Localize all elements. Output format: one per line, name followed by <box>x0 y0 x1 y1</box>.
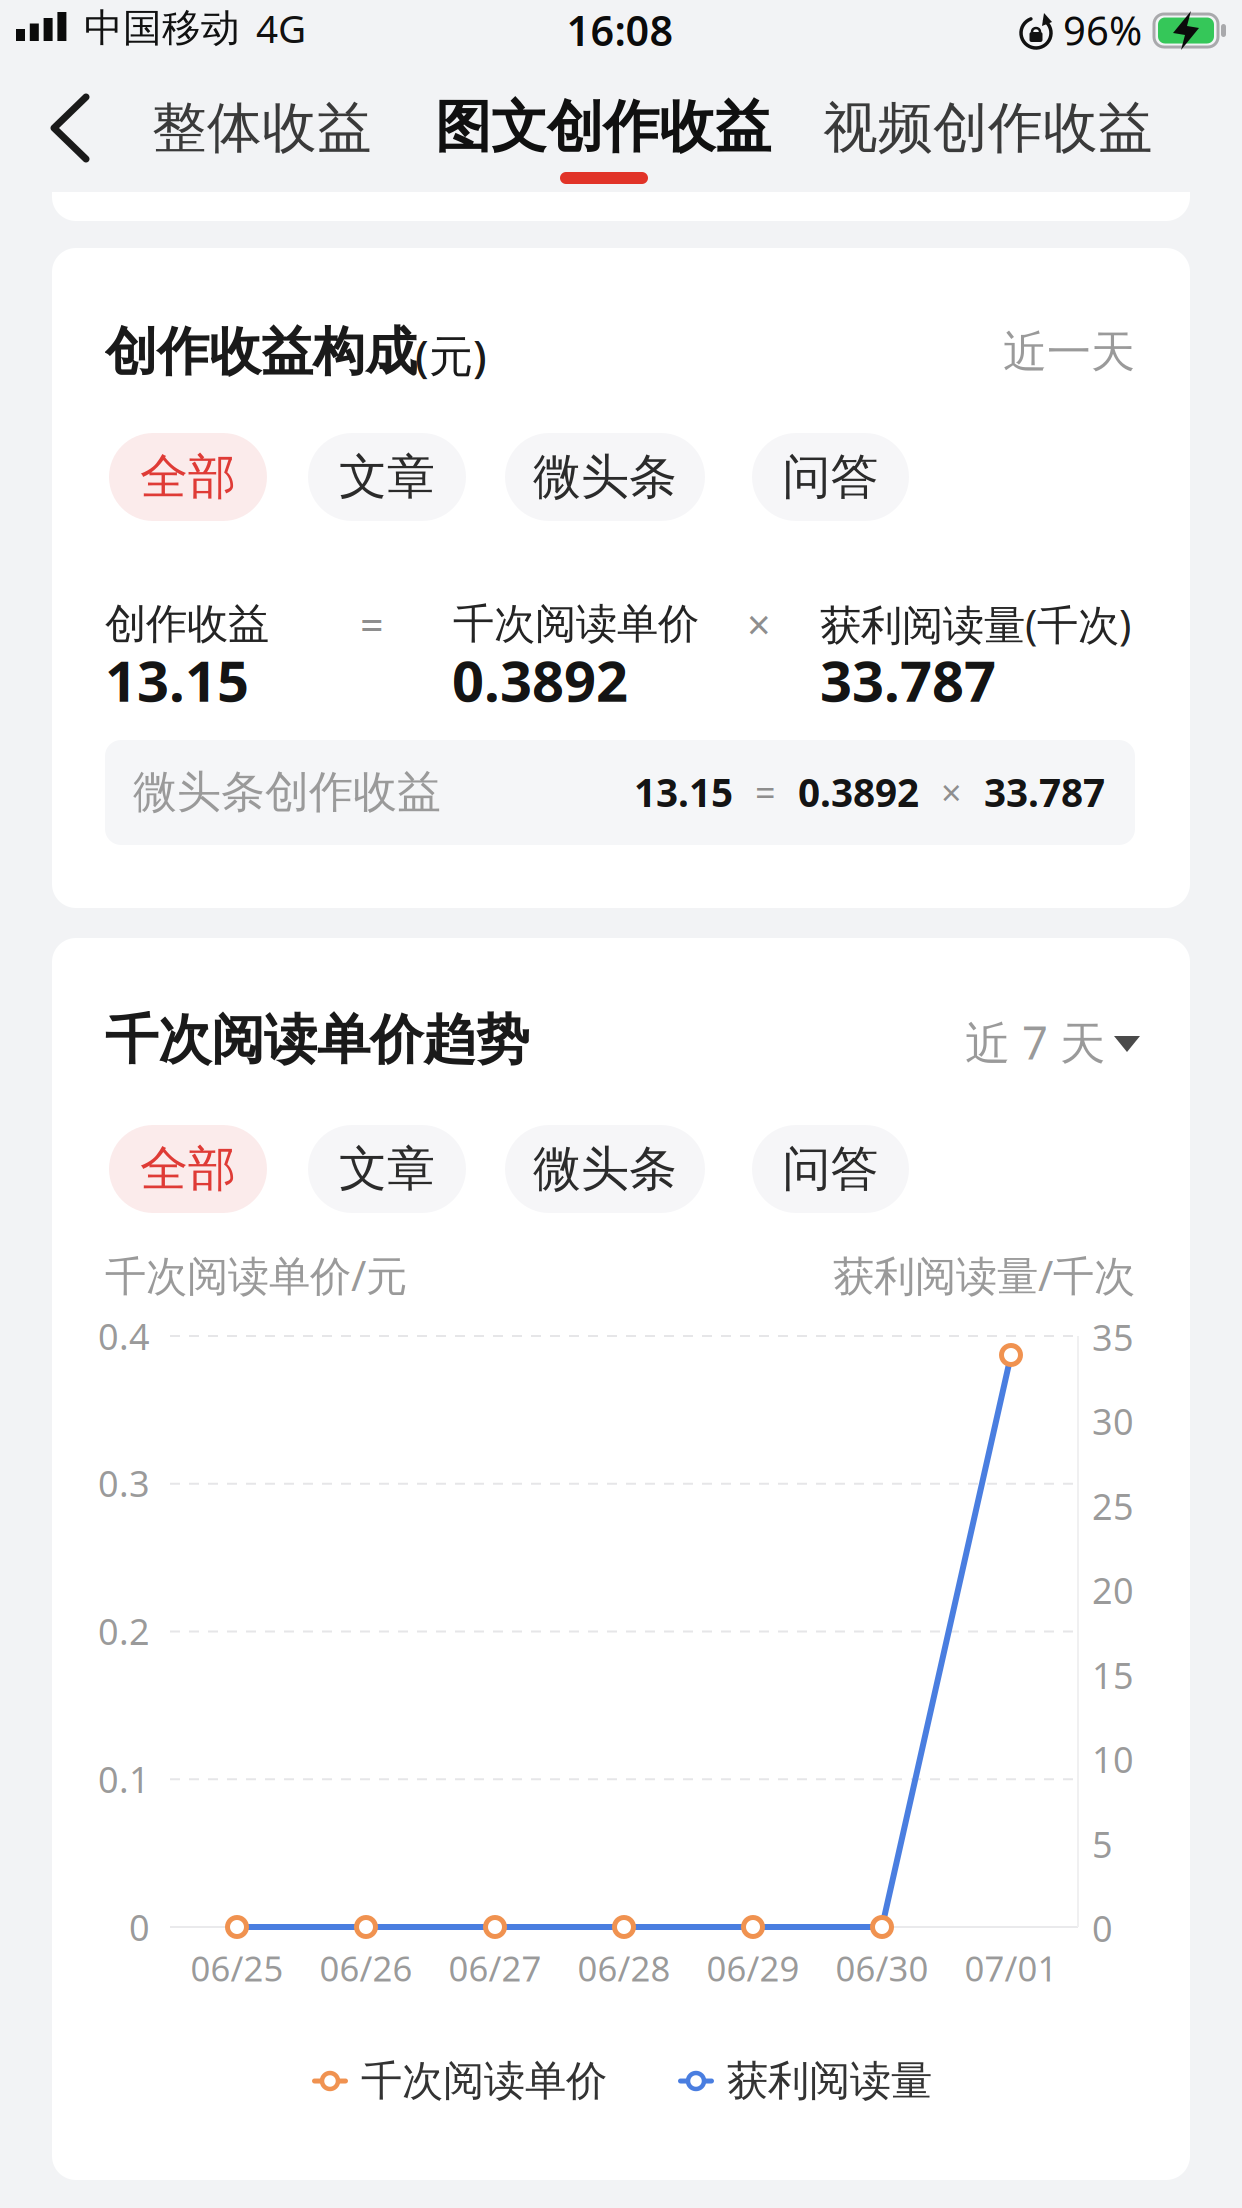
staticText: 创作收益 <box>105 599 269 649</box>
staticText: 千次阅读单价/元 <box>105 1248 407 1302</box>
staticText: 13.15 <box>105 643 249 717</box>
staticText: 全部 <box>140 1139 236 1198</box>
staticText: 16:08 <box>566 3 673 57</box>
staticText: 文章 <box>339 1139 435 1198</box>
staticText: 中国移动 <box>84 4 240 52</box>
staticText: 0.2 <box>98 1607 150 1655</box>
staticText: 0.3892 <box>798 766 919 818</box>
staticText: 35 <box>1092 1313 1134 1361</box>
button[interactable]: 问答 <box>752 1125 909 1213</box>
staticText: 20 <box>1092 1566 1134 1614</box>
button[interactable]: 获利阅读量 <box>677 2051 932 2111</box>
staticText: 0.4 <box>98 1312 150 1360</box>
staticText: 33.787 <box>984 766 1105 818</box>
staticText: 全部 <box>140 447 236 506</box>
staticText: 0.3892 <box>452 643 628 717</box>
staticText: 10 <box>1092 1735 1134 1783</box>
button[interactable] <box>36 83 116 173</box>
staticText: 千次阅读单价趋势 <box>105 1007 529 1073</box>
staticText: 0.1 <box>98 1755 150 1803</box>
staticText: 问答 <box>782 1139 878 1198</box>
staticText: 千次阅读单价 <box>361 2056 607 2106</box>
staticText: = <box>755 768 776 816</box>
staticText: 微头条创作收益 <box>133 765 441 819</box>
staticText: 视频创作收益 <box>823 94 1153 161</box>
staticText: 06/26 <box>319 1945 412 1991</box>
button[interactable]: 视频创作收益 <box>0 0 700 90</box>
button[interactable]: 整体收益 <box>0 0 700 90</box>
staticText: 图文创作收益 <box>435 93 771 161</box>
staticText: 06/30 <box>835 1945 928 1991</box>
staticText: 问答 <box>782 447 878 506</box>
staticText: × <box>747 597 771 651</box>
button[interactable]: 近一天 <box>0 0 300 90</box>
staticText: × <box>941 768 962 816</box>
button[interactable]: 千次阅读单价 <box>311 2051 607 2111</box>
button[interactable]: 微头条 <box>505 433 705 521</box>
staticText: 0 <box>1092 1904 1113 1952</box>
staticText: 微头条 <box>533 1139 677 1198</box>
staticText: 整体收益 <box>152 94 372 161</box>
button[interactable]: 文章 <box>308 433 466 521</box>
staticText: 近一天 <box>1003 325 1135 379</box>
staticText: 5 <box>1092 1820 1113 1868</box>
staticText: 06/27 <box>448 1945 541 1991</box>
button[interactable]: 问答 <box>752 433 909 521</box>
staticText: 06/25 <box>190 1945 283 1991</box>
staticText: = <box>360 597 384 651</box>
button[interactable]: 全部 <box>109 433 267 521</box>
button[interactable]: 近 7 天 <box>0 0 1242 2208</box>
staticText: 33.787 <box>820 643 996 717</box>
staticText: 96% <box>1063 3 1142 56</box>
staticText: 06/28 <box>577 1945 670 1991</box>
button[interactable]: 全部 <box>109 1125 267 1213</box>
button[interactable]: 文章 <box>308 1125 466 1213</box>
button[interactable]: 微头条 <box>505 1125 705 1213</box>
staticText: 近 7 天 <box>965 1012 1105 1072</box>
staticText: 25 <box>1092 1482 1134 1530</box>
staticText: 获利阅读量/千次 <box>833 1248 1135 1302</box>
staticText: 0 <box>129 1903 150 1951</box>
staticText: 获利阅读量(千次) <box>820 597 1131 651</box>
button[interactable]: 图文创作收益 <box>0 0 700 90</box>
staticText: 千次阅读单价 <box>453 599 699 649</box>
staticText: 13.15 <box>634 766 733 818</box>
staticText: 创作收益构成 <box>105 320 417 384</box>
staticText: 文章 <box>339 447 435 506</box>
staticText: 15 <box>1092 1651 1134 1699</box>
staticText: 微头条 <box>533 447 677 506</box>
staticText: 获利阅读量 <box>727 2056 932 2106</box>
staticText: 0.3 <box>98 1459 150 1507</box>
staticText: 30 <box>1092 1397 1134 1445</box>
staticText: 4G <box>256 2 306 54</box>
staticText: 07/01 <box>964 1945 1057 1991</box>
staticText: 06/29 <box>706 1945 799 1991</box>
staticText: (元) <box>415 326 487 384</box>
